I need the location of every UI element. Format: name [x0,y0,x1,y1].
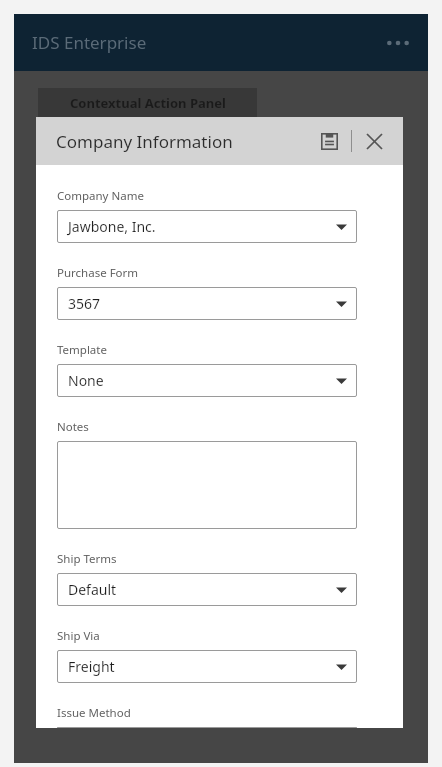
staticText: Issue Method [57,705,131,721]
staticText: Default [68,580,336,599]
staticText: Ship Via [57,628,100,644]
button[interactable] [57,441,357,529]
staticText: Freight [68,657,336,676]
button[interactable]: More options [380,25,416,61]
staticText: Jawbone, Inc. [68,217,336,236]
staticText: Ship Terms [57,551,117,567]
button[interactable]: Save [314,126,344,156]
button[interactable]: 3567 [57,287,357,320]
staticText: Purchase Form [57,265,139,281]
staticText: Template [57,342,107,358]
staticText: 3567 [68,294,336,313]
staticText: Company Information [56,130,314,153]
staticText: IDS Enterprise [32,31,147,54]
staticText: Company Name [57,188,144,204]
button[interactable]: None [57,364,357,397]
button[interactable]: Freight [57,650,357,683]
button[interactable]: Default [57,573,357,606]
button[interactable]: Close [359,126,389,156]
staticText: Contextual Action Panel [70,94,226,112]
button[interactable]: Jawbone, Inc. [57,210,357,243]
staticText: Notes [57,419,89,435]
staticText: None [68,371,336,390]
